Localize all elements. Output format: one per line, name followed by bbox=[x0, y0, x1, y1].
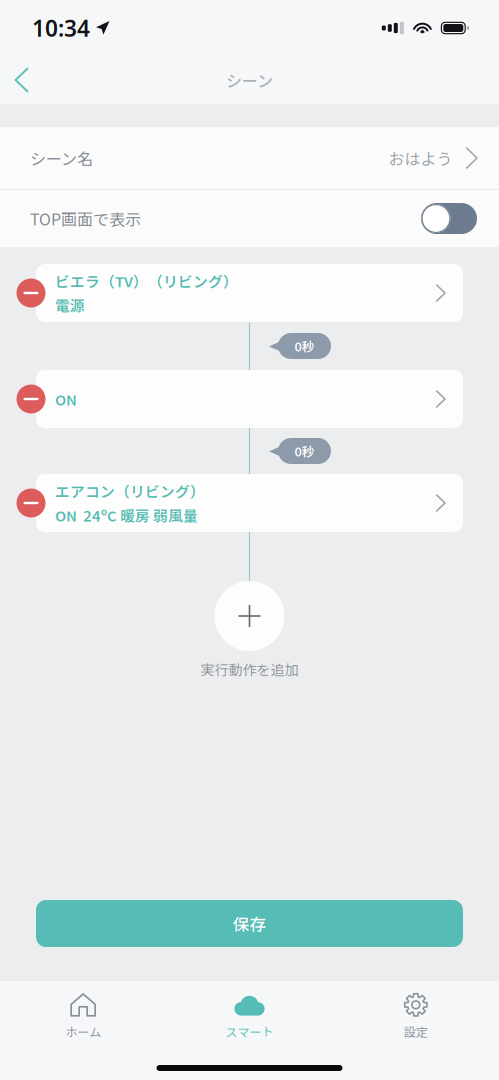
button[interactable]: 実行動作を追加 bbox=[200, 581, 298, 679]
button[interactable]: ホーム bbox=[0, 986, 166, 1046]
staticText: 0秒 bbox=[294, 337, 314, 355]
staticText: スマート bbox=[225, 1023, 273, 1040]
button[interactable]: 削除 bbox=[12, 377, 50, 421]
button[interactable]: シーン名 bbox=[0, 127, 499, 189]
button[interactable]: 保存 bbox=[36, 900, 463, 947]
staticText: 0秒 bbox=[294, 442, 314, 460]
button[interactable]: TOP画面で表示 bbox=[0, 190, 499, 247]
button[interactable]: スマート bbox=[166, 986, 333, 1046]
button[interactable]: 戻る bbox=[0, 57, 43, 103]
staticText: 10:34 bbox=[32, 13, 90, 43]
staticText: エアコン（リビング） bbox=[55, 480, 205, 501]
staticText: ホーム bbox=[65, 1023, 101, 1040]
staticText: シーン bbox=[226, 68, 273, 92]
staticText: シーン名 bbox=[30, 146, 93, 170]
staticText: 実行動作を追加 bbox=[200, 659, 298, 679]
button[interactable]: 0秒 bbox=[269, 428, 331, 474]
staticText: 電源 bbox=[55, 294, 85, 316]
staticText: ON bbox=[55, 388, 77, 410]
staticText: 設定 bbox=[404, 1023, 428, 1040]
staticText: TOP画面で表示 bbox=[30, 207, 141, 230]
staticText: おはよう bbox=[389, 146, 453, 170]
button[interactable]: 削除 bbox=[12, 481, 50, 525]
button[interactable]: 0秒 bbox=[269, 322, 331, 370]
staticText: 保存 bbox=[232, 911, 266, 935]
button[interactable]: 設定 bbox=[333, 986, 499, 1046]
staticText: ビエラ（TV）（リビング） bbox=[55, 270, 238, 291]
button[interactable]: 削除 bbox=[12, 271, 50, 315]
staticText: ON 24ºC 暖房 弱風量 bbox=[55, 504, 198, 526]
